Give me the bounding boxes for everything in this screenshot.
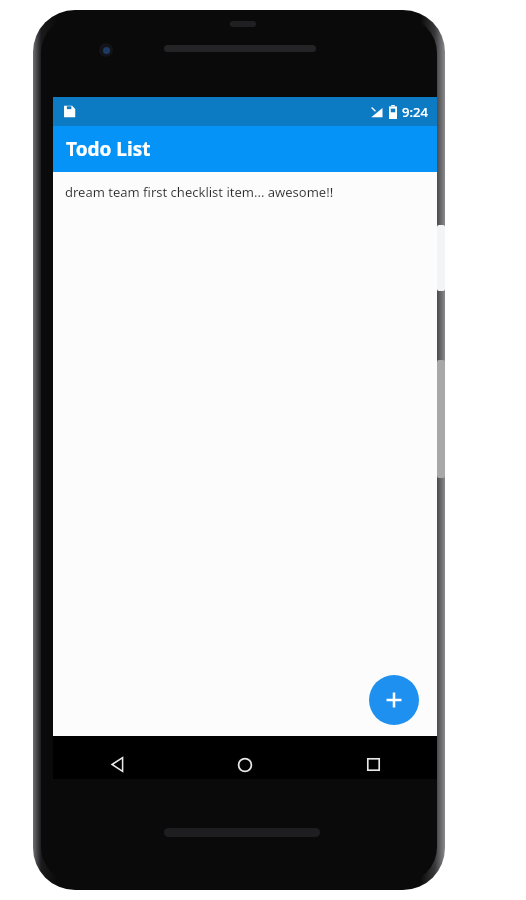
button[interactable]: dream team first checklist item... aweso… <box>53 172 437 212</box>
staticText: Todo List <box>66 136 151 162</box>
button[interactable]: Add todo <box>369 675 419 725</box>
staticText: dream team first checklist item... aweso… <box>65 183 334 201</box>
button[interactable]: Home <box>181 750 309 779</box>
button[interactable]: Back <box>53 750 181 779</box>
button[interactable]: Recents <box>309 750 437 779</box>
staticText: 9:24 <box>402 103 428 121</box>
